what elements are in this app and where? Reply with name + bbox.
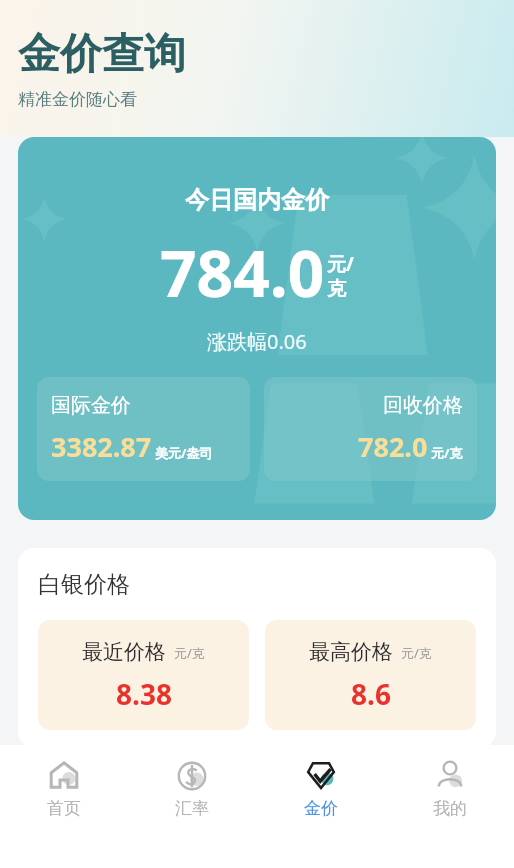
staticText: 回收价格	[383, 393, 463, 418]
staticText: 国际金价	[51, 393, 131, 418]
button[interactable]: 首页	[0, 745, 128, 868]
staticText: 精准金价随心看	[18, 89, 137, 110]
button[interactable]: 国际金价	[37, 377, 250, 481]
staticText: 我的	[433, 798, 467, 819]
staticText: 最近价格	[82, 639, 166, 665]
staticText: 今日国内金价	[185, 185, 329, 215]
staticText: 首页	[47, 798, 81, 819]
button[interactable]: 最近价格	[38, 620, 249, 730]
button[interactable]: 回收价格	[264, 377, 477, 481]
staticText: 美元/盎司	[155, 444, 213, 462]
button[interactable]: 最高价格	[265, 620, 476, 730]
button[interactable]: 汇率	[128, 745, 256, 868]
staticText: 涨跌幅0.06	[207, 328, 307, 355]
staticText: 8.6	[351, 675, 391, 713]
staticText: 784.0	[160, 229, 325, 316]
staticText: 克	[327, 277, 346, 301]
staticText: 最高价格	[309, 639, 393, 665]
staticText: 元/克	[431, 444, 463, 462]
staticText: 白银价格	[38, 570, 130, 599]
button[interactable]: 金价	[256, 745, 385, 868]
button[interactable]: 今日国内金价	[18, 137, 496, 520]
staticText: 金价查询	[18, 28, 186, 81]
staticText: 782.0	[358, 428, 428, 465]
staticText: 元/克	[174, 644, 205, 662]
button[interactable]: 我的	[385, 745, 514, 868]
staticText: 元/克	[401, 644, 432, 662]
staticText: 8.38	[116, 675, 172, 713]
staticText: 3382.87	[51, 428, 152, 465]
staticText: 汇率	[175, 798, 209, 819]
button[interactable]: 白银价格	[18, 548, 496, 748]
staticText: 金价	[304, 798, 338, 819]
staticText: 元/	[327, 251, 354, 277]
